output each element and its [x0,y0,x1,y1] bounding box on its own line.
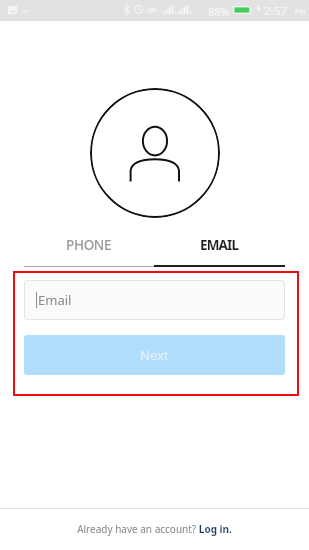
button[interactable]: Already have an account? Log in. [77,522,232,536]
button[interactable]: Add profile photo [90,88,220,218]
staticText: 2:57 [264,3,287,19]
button[interactable]: PHONE [24,232,154,258]
staticText: Next [140,346,169,364]
button[interactable]: Next [24,335,285,375]
staticText: PHONE [66,236,112,254]
staticText: Email [38,291,72,309]
staticText: EMAIL [200,236,239,254]
button[interactable]: EMAIL [154,232,285,258]
staticText: Already have an account? Log in. [77,522,232,536]
staticText: PM [295,7,306,17]
button[interactable]: Email [24,280,285,320]
staticText: 88% [208,4,230,19]
